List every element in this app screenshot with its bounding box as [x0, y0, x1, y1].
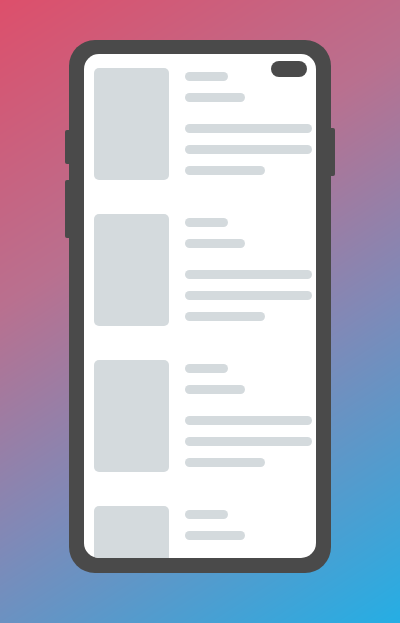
button[interactable]: Front camera: [271, 61, 307, 77]
